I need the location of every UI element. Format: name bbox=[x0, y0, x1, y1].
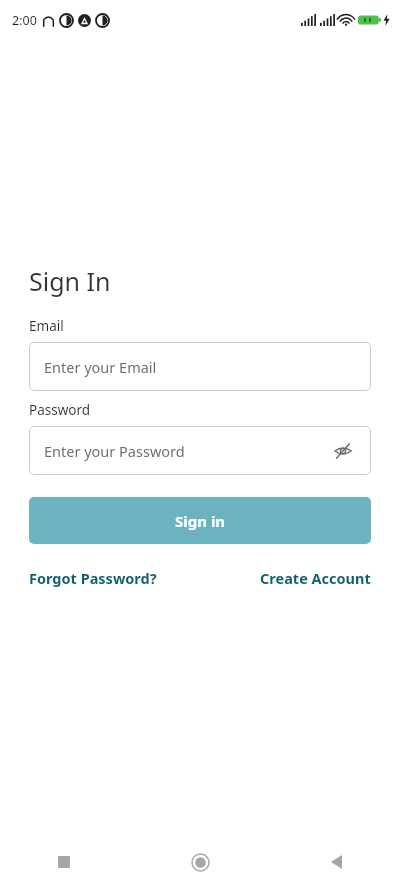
button[interactable]: Back bbox=[312, 838, 360, 886]
button[interactable]: Sign in bbox=[29, 497, 371, 544]
button[interactable]: Enter your Email bbox=[29, 342, 371, 391]
button[interactable]: Enter your Password bbox=[29, 426, 371, 475]
staticText: Create Account bbox=[260, 568, 371, 588]
staticText: Forgot Password? bbox=[29, 568, 157, 588]
button[interactable]: Recent apps bbox=[40, 838, 88, 886]
staticText: 2:00 bbox=[12, 12, 37, 29]
staticText: Enter your Password bbox=[44, 441, 185, 461]
staticText: Email bbox=[29, 317, 64, 335]
button[interactable]: Home bbox=[176, 838, 224, 886]
button[interactable]: Forgot Password? bbox=[29, 564, 200, 592]
staticText: Sign in bbox=[175, 511, 226, 531]
staticText: Password bbox=[29, 401, 91, 419]
staticText: Enter your Email bbox=[44, 357, 157, 377]
staticText: Sign In bbox=[29, 264, 111, 298]
button[interactable]: Create Account bbox=[200, 564, 371, 592]
button[interactable]: Show password bbox=[330, 438, 356, 464]
